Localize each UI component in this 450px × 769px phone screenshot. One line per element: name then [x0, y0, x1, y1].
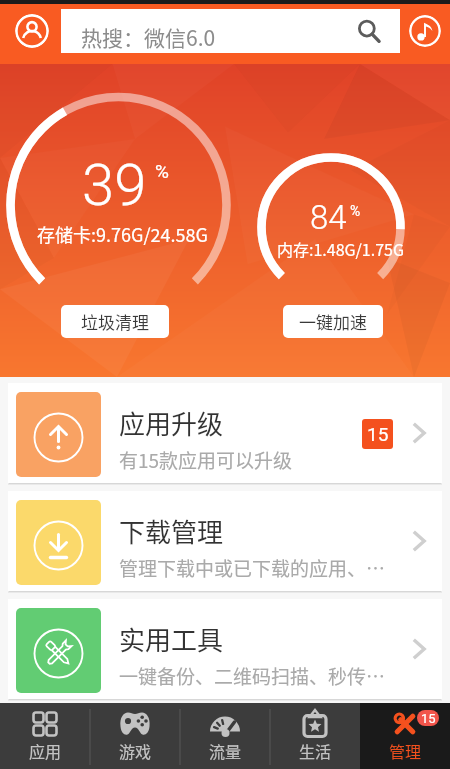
- staticText: 84: [310, 198, 347, 237]
- staticText: 实用工具: [119, 620, 224, 658]
- button[interactable]: 一键加速: [283, 305, 383, 338]
- button[interactable]: 热搜：微信6.0: [61, 9, 400, 53]
- staticText: 生活: [299, 739, 332, 762]
- button[interactable]: 应用升级: [8, 383, 442, 483]
- button[interactable]: 应用: [0, 703, 90, 769]
- button[interactable]: Account: [15, 14, 49, 48]
- staticText: %: [155, 160, 169, 182]
- staticText: 存储卡:9.76G/24.58G: [37, 221, 208, 247]
- button[interactable]: 下载管理: [8, 491, 442, 591]
- staticText: 内存:1.48G/1.75G: [277, 237, 404, 260]
- staticText: 有15款应用可以升级: [119, 446, 293, 474]
- button[interactable]: 垃圾清理: [61, 305, 169, 338]
- button[interactable]: 生活: [270, 703, 360, 769]
- button[interactable]: Music: [409, 15, 441, 47]
- staticText: %: [350, 203, 361, 219]
- staticText: 15: [367, 423, 389, 445]
- staticText: 一键备份、二维码扫描、秒传…: [119, 662, 386, 690]
- staticText: 下载管理: [119, 512, 224, 550]
- button[interactable]: 游戏: [90, 703, 180, 769]
- button[interactable]: 15: [362, 419, 393, 449]
- staticText: 应用升级: [119, 404, 224, 442]
- staticText: 一键加速: [299, 309, 367, 334]
- staticText: 39: [82, 151, 147, 219]
- staticText: 管理: [389, 739, 422, 762]
- button[interactable]: 流量: [180, 703, 270, 769]
- staticText: 流量: [209, 739, 242, 762]
- staticText: 应用: [29, 739, 62, 762]
- staticText: 管理下载中或已下载的应用、…: [119, 554, 386, 582]
- staticText: 垃圾清理: [81, 309, 149, 334]
- button[interactable]: 15: [360, 703, 450, 769]
- staticText: 15: [421, 711, 436, 726]
- button[interactable]: 实用工具: [8, 599, 442, 699]
- staticText: 游戏: [119, 739, 152, 762]
- staticText: 热搜：微信6.0: [81, 22, 216, 52]
